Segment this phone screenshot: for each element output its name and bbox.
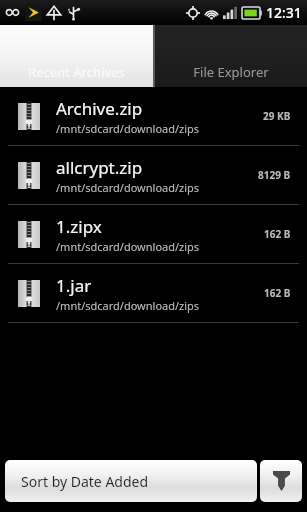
staticText: 12:31 [266,3,302,22]
button[interactable]: File Explorer [155,25,307,87]
button[interactable]: Recent Archives [0,25,153,87]
staticText: /mnt/sdcard/download/zips [56,298,200,313]
staticText: 29 KB [263,109,291,123]
staticText: File Explorer [193,63,269,81]
staticText: 1.jar [56,274,92,297]
staticText: /mnt/sdcard/download/zips [56,121,200,136]
button[interactable]: 1.jar [0,264,307,322]
button[interactable]: Sort by Date Added [5,460,257,502]
staticText: 162 B [264,227,291,241]
staticText: 1.zipx [56,215,102,238]
button[interactable]: 1.zipx [0,205,307,263]
staticText: Recent Archives [28,63,125,81]
staticText: Sort by Date Added [21,472,149,491]
staticText: Archive.zip [56,97,143,120]
staticText: 8129 B [258,168,291,182]
staticText: 162 B [264,286,291,300]
button[interactable]: Filter [260,460,302,502]
staticText: /mnt/sdcard/download/zips [56,180,200,195]
staticText: allcrypt.zip [56,156,143,179]
button[interactable]: allcrypt.zip [0,146,307,204]
button[interactable]: Archive.zip [0,87,307,145]
staticText: /mnt/sdcard/download/zips [56,239,200,254]
